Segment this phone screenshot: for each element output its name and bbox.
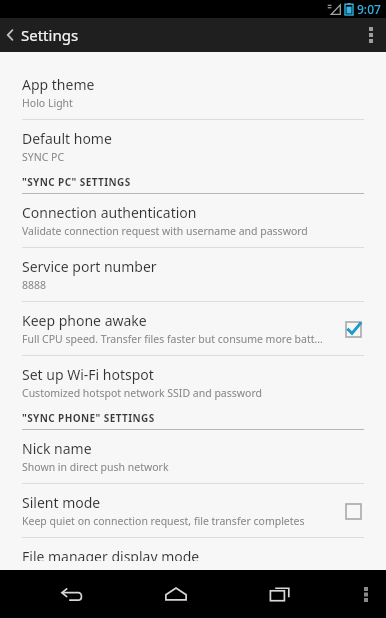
staticText: Customized hotspot network SSID and pass… <box>22 386 262 400</box>
staticText: Nick name <box>22 439 92 458</box>
staticText: Connection authentication <box>22 203 197 222</box>
button[interactable]: Default home <box>0 120 386 173</box>
button[interactable]: Unchecked <box>338 496 368 526</box>
button[interactable]: More options <box>356 18 386 52</box>
staticText: "SYNC PC" SETTINGS <box>22 175 131 189</box>
staticText: File manager display mode <box>22 547 200 561</box>
button[interactable]: Back <box>45 570 99 618</box>
button[interactable]: Service port number <box>0 248 386 301</box>
staticText: Shown in direct push network <box>22 460 169 474</box>
staticText: Service port number <box>22 257 157 276</box>
button[interactable]: Home <box>149 570 203 618</box>
staticText: "SYNC PHONE" SETTINGS <box>22 411 155 425</box>
button[interactable]: Menu <box>350 570 382 618</box>
button[interactable]: Settings <box>0 21 91 49</box>
button[interactable]: Keep phone awake <box>0 302 386 355</box>
staticText: Full CPU speed. Transfer files faster bu… <box>22 332 326 346</box>
staticText: Settings <box>21 25 79 45</box>
staticText: SYNC PC <box>22 150 65 164</box>
button[interactable]: Connection authentication <box>0 194 386 247</box>
staticText: Default home <box>22 129 112 148</box>
staticText: Validate connection request with usernam… <box>22 224 308 238</box>
button[interactable]: Checked <box>338 314 368 344</box>
button[interactable]: Recent apps <box>253 570 307 618</box>
staticText: 9:07 <box>357 1 381 17</box>
staticText: Holo Light <box>22 96 73 110</box>
staticText: Keep phone awake <box>22 311 147 330</box>
button[interactable]: Silent mode <box>0 484 386 537</box>
staticText: App theme <box>22 75 95 94</box>
button[interactable]: Nick name <box>0 430 386 483</box>
staticText: 8888 <box>22 278 47 292</box>
staticText: Set up Wi-Fi hotspot <box>22 365 154 384</box>
button[interactable]: File manager display mode <box>0 538 386 570</box>
staticText: Silent mode <box>22 493 101 512</box>
staticText: Keep quiet on connection request, file t… <box>22 514 305 528</box>
button[interactable]: Set up Wi-Fi hotspot <box>0 356 386 409</box>
button[interactable]: App theme <box>0 66 386 119</box>
